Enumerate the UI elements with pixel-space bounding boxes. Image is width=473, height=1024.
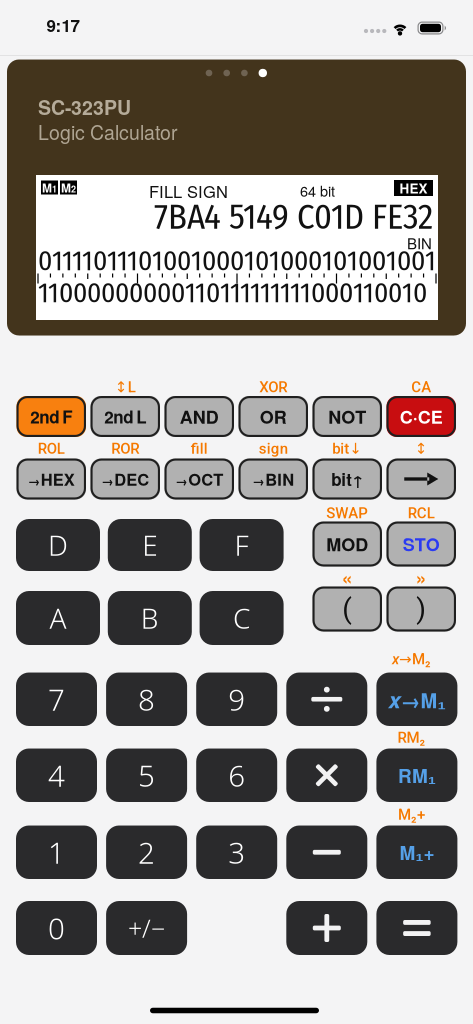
staticText: A xyxy=(49,599,66,637)
staticText: sign xyxy=(259,440,288,457)
button[interactable]: Add xyxy=(286,901,367,955)
staticText: BIN xyxy=(407,232,432,253)
button[interactable]: →HEX xyxy=(16,458,86,499)
staticText: RM₁ xyxy=(398,762,436,789)
button[interactable]: 3 xyxy=(196,825,277,879)
staticText: RCL xyxy=(408,504,435,522)
button[interactable]: 5 xyxy=(106,748,187,802)
staticText: XOR xyxy=(259,378,287,396)
staticText: 1 xyxy=(48,832,65,872)
button[interactable]: Subtract xyxy=(286,825,367,879)
button[interactable]: x→M₁ xyxy=(376,672,457,726)
staticText: 2 xyxy=(138,832,155,872)
button[interactable]: 1 xyxy=(16,825,97,879)
staticText: 4 xyxy=(48,755,65,795)
staticText: →OCT xyxy=(175,467,223,490)
staticText: OR xyxy=(260,404,287,429)
staticText: +/− xyxy=(128,911,165,945)
button[interactable]: →OCT xyxy=(164,458,234,499)
staticText: B xyxy=(141,599,159,637)
staticText: CA xyxy=(411,378,431,396)
staticText: HEX xyxy=(399,178,427,198)
button[interactable]: 2nd F xyxy=(16,396,86,437)
button[interactable]: →BIN xyxy=(238,458,308,499)
staticText: 01111011101001000101000101001001 xyxy=(38,244,436,278)
staticText: SWAP xyxy=(326,504,368,522)
staticText: 5 xyxy=(138,755,155,795)
button[interactable]: RM₁ xyxy=(376,748,457,802)
button[interactable]: ( xyxy=(312,586,382,631)
button[interactable]: E xyxy=(108,519,192,571)
button[interactable]: ) xyxy=(386,586,456,631)
staticText: » xyxy=(416,563,427,591)
button[interactable]: NOT xyxy=(312,396,382,437)
button[interactable]: Multiply xyxy=(286,748,367,802)
staticText: 0 xyxy=(48,908,65,948)
button[interactable]: C·CE xyxy=(386,396,456,437)
staticText: ↕ xyxy=(415,440,428,457)
button[interactable]: Shift right xyxy=(386,458,456,499)
button[interactable]: STO xyxy=(386,521,456,566)
staticText: bit↑ xyxy=(331,467,363,491)
staticText: ROL xyxy=(38,440,65,457)
staticText: 7 xyxy=(48,679,65,719)
button[interactable]: 2nd L xyxy=(90,396,160,437)
button[interactable]: MOD xyxy=(312,521,382,566)
button[interactable]: 0 xyxy=(16,901,97,955)
staticText: Logic Calculator xyxy=(38,117,177,145)
staticText: M₁+ xyxy=(399,839,434,866)
staticText: ( xyxy=(342,593,352,625)
button[interactable]: +/− xyxy=(106,901,187,955)
staticText: MOD xyxy=(326,531,368,557)
button[interactable]: 4 xyxy=(16,748,97,802)
staticText: bit↓ xyxy=(332,440,362,457)
staticText: 11000000000110111111111000110010 xyxy=(38,276,427,310)
staticText: FILL SIGN xyxy=(149,179,228,203)
staticText: →BIN xyxy=(252,467,294,490)
button[interactable]: M₁+ xyxy=(376,825,457,879)
staticText: M1 xyxy=(42,179,57,196)
staticText: SC-323PU xyxy=(38,93,131,121)
staticText: E xyxy=(142,526,157,564)
staticText: 7BA4 5149 C01D FE32 xyxy=(154,196,433,238)
staticText: 9 xyxy=(228,679,245,719)
button[interactable]: 9 xyxy=(196,672,277,726)
button[interactable]: 8 xyxy=(106,672,187,726)
button[interactable]: F xyxy=(200,519,284,571)
staticText: 3 xyxy=(228,832,245,872)
staticText: ↕L xyxy=(115,378,136,396)
button[interactable]: 7 xyxy=(16,672,97,726)
button[interactable]: A xyxy=(16,591,100,645)
staticText: F xyxy=(235,526,249,564)
staticText: x→M₂ xyxy=(392,650,431,667)
button[interactable]: AND xyxy=(164,396,234,437)
button[interactable]: C xyxy=(200,591,284,645)
button[interactable]: bit↑ xyxy=(312,458,382,499)
staticText: STO xyxy=(403,531,440,557)
button[interactable]: OR xyxy=(238,396,308,437)
staticText: 2nd L xyxy=(104,404,146,429)
staticText: M2 xyxy=(61,179,76,196)
staticText: fill xyxy=(191,440,208,457)
staticText: NOT xyxy=(328,404,366,429)
staticText: 8 xyxy=(138,679,155,719)
staticText: RM₂ xyxy=(397,729,425,746)
staticText: →HEX xyxy=(28,467,75,490)
staticText: M₂+ xyxy=(398,806,425,823)
staticText: 64 bit xyxy=(300,180,335,201)
staticText: 9:17 xyxy=(46,13,79,37)
button[interactable]: →DEC xyxy=(90,458,160,499)
staticText: C·CE xyxy=(400,404,443,429)
button[interactable]: B xyxy=(108,591,192,645)
button[interactable]: Equals xyxy=(376,901,457,955)
button[interactable]: 6 xyxy=(196,748,277,802)
staticText: ROR xyxy=(111,440,139,457)
staticText: →DEC xyxy=(101,467,149,490)
button[interactable]: 2 xyxy=(106,825,187,879)
staticText: AND xyxy=(180,404,219,429)
staticText: « xyxy=(342,563,353,591)
staticText: x→M₁ xyxy=(388,684,445,715)
staticText: 2nd F xyxy=(30,404,72,429)
button[interactable]: D xyxy=(16,519,100,571)
button[interactable]: Divide xyxy=(286,672,367,726)
